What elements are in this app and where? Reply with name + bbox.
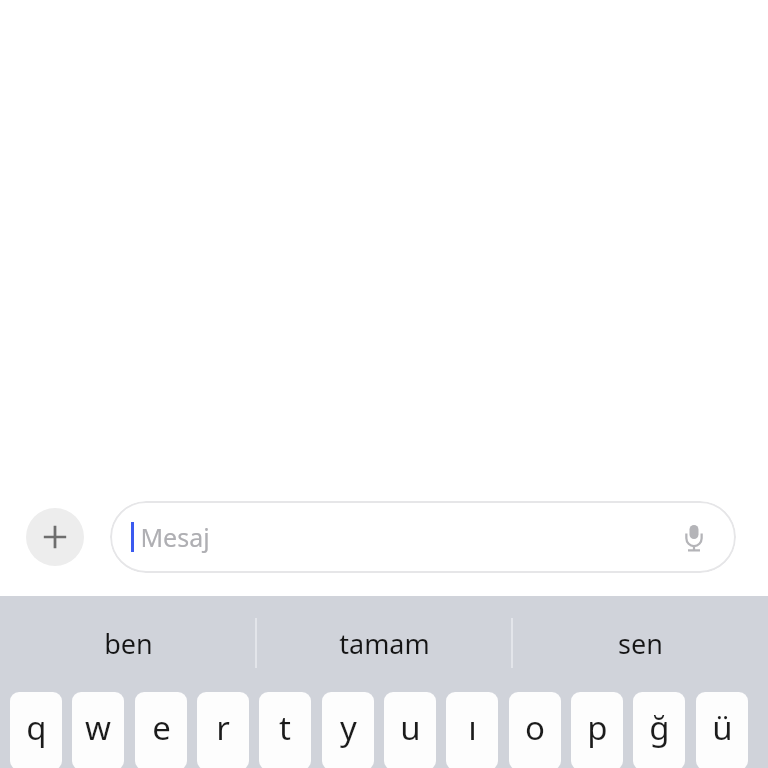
button[interactable]: Sesli mesaj — [672, 515, 716, 559]
button[interactable]: q — [10, 692, 62, 768]
button[interactable]: u — [384, 692, 436, 768]
staticText: y — [340, 705, 357, 750]
button[interactable]: ü — [696, 692, 748, 768]
staticText: u — [400, 705, 421, 750]
staticText: Mesaj — [140, 520, 210, 554]
button[interactable]: y — [322, 692, 374, 768]
staticText: p — [587, 705, 608, 750]
button[interactable]: tamam — [256, 596, 512, 690]
button[interactable]: r — [197, 692, 249, 768]
button[interactable]: ben — [0, 596, 256, 690]
button[interactable]: o — [509, 692, 561, 768]
staticText: q — [26, 705, 47, 750]
staticText: e — [152, 705, 171, 750]
button[interactable]: e — [135, 692, 187, 768]
staticText: ğ — [649, 705, 670, 750]
button[interactable]: sen — [512, 596, 768, 690]
staticText: tamam — [339, 625, 430, 662]
button[interactable]: t — [259, 692, 311, 768]
staticText: t — [279, 705, 291, 750]
staticText: w — [85, 705, 111, 750]
button[interactable]: ğ — [633, 692, 685, 768]
staticText: ı — [468, 705, 477, 750]
button[interactable]: ı — [446, 692, 498, 768]
staticText: r — [216, 705, 230, 750]
staticText: ü — [712, 705, 733, 750]
staticText: o — [525, 705, 545, 750]
staticText: ben — [104, 625, 153, 662]
button[interactable]: w — [72, 692, 124, 768]
button[interactable]: p — [571, 692, 623, 768]
button[interactable]: Mesaj — [110, 501, 736, 573]
staticText: sen — [618, 625, 663, 662]
button[interactable]: Ekle — [26, 508, 84, 566]
